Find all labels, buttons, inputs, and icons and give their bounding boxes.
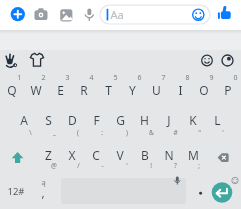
staticText: K <box>189 112 197 128</box>
button[interactable]: T <box>96 73 120 107</box>
button[interactable]: O <box>192 73 216 107</box>
button[interactable]: Q <box>0 73 24 107</box>
staticText: L <box>214 112 221 128</box>
staticText: H <box>140 112 149 128</box>
staticText: X <box>68 147 76 163</box>
staticText: D <box>68 112 77 128</box>
staticText: W <box>30 82 42 98</box>
button[interactable]: D <box>60 103 84 137</box>
staticText: Aa <box>110 7 124 22</box>
staticText: ; <box>198 161 200 170</box>
staticText: I <box>178 82 183 98</box>
staticText: 5 <box>113 73 118 83</box>
staticText: P <box>224 82 232 98</box>
staticText: F <box>93 112 100 128</box>
staticText: 1 <box>17 73 22 83</box>
button[interactable] <box>211 140 235 174</box>
staticText: ! <box>150 161 152 170</box>
staticText: 9 <box>209 73 214 83</box>
staticText: 3 <box>65 73 70 83</box>
staticText: E <box>57 82 64 98</box>
staticText: M <box>188 147 199 163</box>
button[interactable]: B <box>133 138 157 172</box>
staticText: V <box>116 147 124 163</box>
staticText: ) <box>126 128 128 137</box>
staticText: ? <box>174 161 177 170</box>
button[interactable]: L <box>205 103 229 137</box>
button[interactable]: M <box>181 138 205 172</box>
staticText: @ <box>51 161 57 170</box>
staticText: , <box>41 184 45 200</box>
button[interactable] <box>3 52 20 69</box>
staticText: ' <box>126 161 128 170</box>
staticText: 2 <box>41 73 46 83</box>
staticText: Q <box>7 82 17 98</box>
button[interactable]: X <box>60 138 84 172</box>
staticText: Z <box>45 147 52 163</box>
staticText: 6 <box>137 73 142 83</box>
staticText: & <box>149 128 154 137</box>
staticText: B <box>141 147 149 163</box>
button[interactable]: H <box>132 103 156 137</box>
staticText: R <box>80 82 88 98</box>
button[interactable]: N <box>157 138 181 172</box>
button[interactable]: Y <box>120 73 144 107</box>
staticText: ' <box>222 128 224 137</box>
button[interactable]: I <box>168 73 192 107</box>
button[interactable]: G <box>108 103 132 137</box>
button[interactable]: F <box>84 103 108 137</box>
staticText: U <box>152 82 161 98</box>
button[interactable] <box>83 7 99 23</box>
button[interactable] <box>33 7 49 23</box>
staticText: A <box>20 112 28 128</box>
staticText: - <box>101 161 104 170</box>
staticText: T <box>105 82 112 98</box>
button[interactable]: C <box>84 138 108 172</box>
button[interactable]: V <box>108 138 132 172</box>
staticText: " <box>198 128 201 137</box>
staticText: S <box>45 112 52 128</box>
button[interactable]: J <box>157 103 181 137</box>
button[interactable]: R <box>72 73 96 107</box>
button[interactable] <box>29 52 46 69</box>
button[interactable] <box>6 140 29 174</box>
staticText: ą <box>41 177 46 187</box>
staticText: / <box>77 161 80 170</box>
staticText: Y <box>129 82 136 98</box>
staticText: C <box>92 147 100 163</box>
staticText: G <box>116 112 125 128</box>
staticText: 7 <box>161 73 166 83</box>
button[interactable] <box>59 7 75 23</box>
button[interactable] <box>219 52 236 69</box>
button[interactable]: Z <box>36 138 60 172</box>
button[interactable] <box>100 5 210 24</box>
button[interactable]: K <box>181 103 205 137</box>
button[interactable] <box>61 178 186 204</box>
button[interactable]: , <box>33 182 53 202</box>
staticText: _ <box>53 128 56 137</box>
button[interactable]: 12# <box>1 174 31 208</box>
button[interactable]: A <box>12 103 36 137</box>
button[interactable]: S <box>36 103 60 137</box>
button[interactable]: E <box>48 73 72 107</box>
staticText: 4 <box>89 73 94 83</box>
button[interactable]: U <box>144 73 168 107</box>
staticText: : <box>101 128 103 137</box>
button[interactable] <box>11 7 27 23</box>
staticText: 8 <box>185 73 190 83</box>
button[interactable] <box>211 182 232 203</box>
staticText: O <box>199 82 209 98</box>
staticText: 12# <box>7 185 25 198</box>
button[interactable] <box>199 52 216 69</box>
button[interactable] <box>190 178 210 204</box>
staticText: N <box>164 147 174 163</box>
staticText: 0 <box>233 73 238 83</box>
staticText: ( <box>77 128 79 137</box>
button[interactable]: P <box>216 73 240 107</box>
button[interactable]: W <box>24 73 48 107</box>
button[interactable] <box>219 7 236 24</box>
staticText: J <box>167 112 171 128</box>
staticText: # <box>173 128 178 137</box>
staticText: \ <box>29 128 32 137</box>
